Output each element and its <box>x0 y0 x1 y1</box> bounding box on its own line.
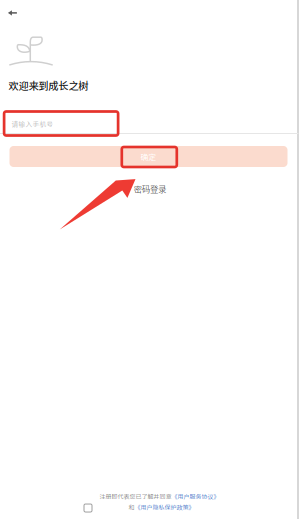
staticText: 《用户服务协议》 <box>171 492 219 501</box>
staticText: 和 <box>128 503 134 511</box>
staticText: 请输入手机号 <box>11 119 53 129</box>
staticText: 确定 <box>140 151 156 162</box>
button[interactable]: 密码登录 <box>0 185 300 193</box>
button[interactable]: Back <box>1 4 23 22</box>
staticText: 欢迎来到成长之树 <box>8 78 88 93</box>
staticText: 《用户隐私保护政策》 <box>134 503 194 511</box>
button[interactable]: 确定 <box>9 146 287 167</box>
staticText: 注册即代表您已了解并同意 <box>99 492 171 501</box>
staticText: 密码登录 <box>134 183 166 195</box>
button[interactable]: Agree to terms <box>84 504 92 512</box>
